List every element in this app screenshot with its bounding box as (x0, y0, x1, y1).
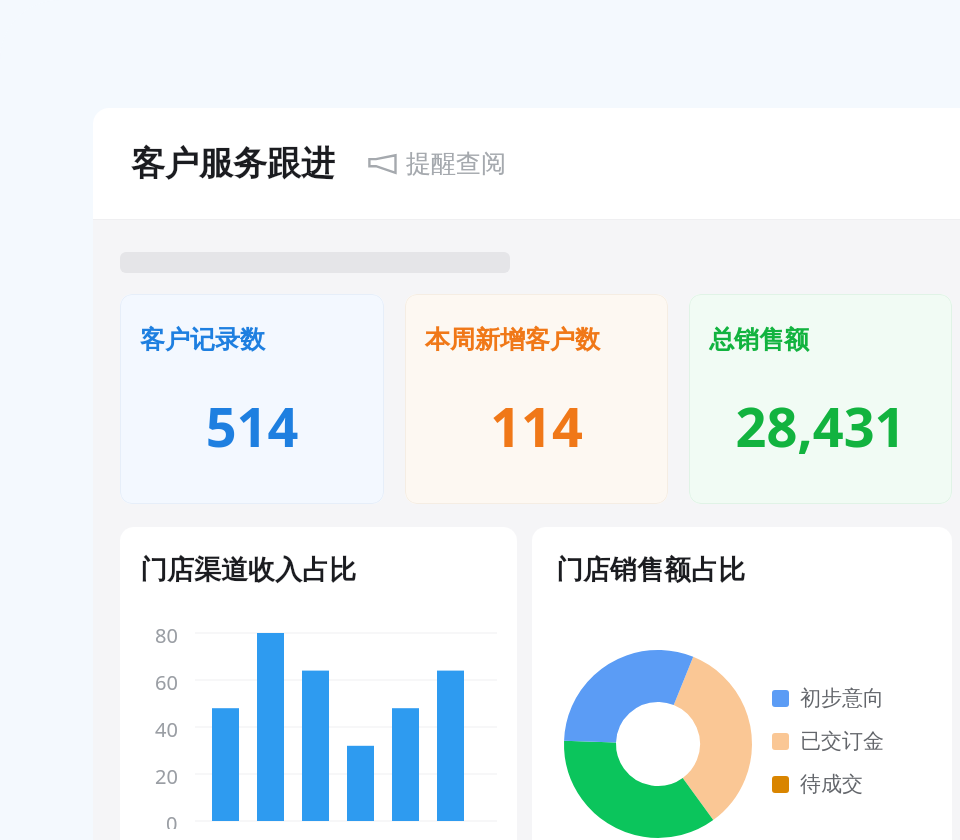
button[interactable]: 总销售额 (689, 294, 952, 504)
other: 提醒查阅 (367, 153, 397, 175)
staticText: 总销售额 (709, 324, 809, 355)
button[interactable]: 已交订金 (772, 728, 884, 754)
button[interactable]: 待成交 (772, 771, 863, 797)
staticText: 60 (155, 669, 178, 696)
staticText: 40 (155, 716, 178, 743)
staticText: 客户记录数 (140, 324, 265, 355)
button[interactable]: 门店销售额占比 (532, 527, 952, 840)
staticText: 门店销售额占比 (556, 553, 745, 587)
staticText: 初步意向 (800, 685, 884, 711)
staticText: 本周新增客户数 (425, 324, 600, 355)
staticText: 提醒查阅 (406, 148, 506, 179)
staticText: 514 (120, 389, 384, 463)
staticText: 待成交 (800, 771, 863, 797)
button[interactable]: 本周新增客户数 (405, 294, 668, 504)
button[interactable]: 门店渠道收入占比 (120, 527, 517, 840)
button[interactable]: 提醒查阅 (363, 142, 510, 185)
staticText: 114 (405, 389, 668, 463)
staticText: 80 (155, 622, 178, 649)
staticText: 门店渠道收入占比 (140, 553, 356, 587)
staticText: 已交订金 (800, 728, 884, 754)
button[interactable]: 初步意向 (772, 685, 884, 711)
button[interactable]: 客户记录数 (120, 294, 384, 504)
staticText: 28,431 (689, 389, 952, 463)
staticText: 0 (166, 810, 178, 829)
staticText: 20 (155, 763, 178, 790)
staticText: 客户服务跟进 (131, 142, 335, 185)
